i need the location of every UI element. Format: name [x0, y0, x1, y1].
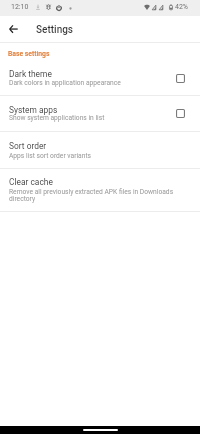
- staticText: 42%: [175, 3, 188, 11]
- staticText: Base settings: [8, 50, 50, 58]
- button[interactable]: Navigate up: [0, 16, 27, 42]
- button[interactable]: System apps: [0, 96, 200, 132]
- button[interactable]: Sort order: [0, 132, 200, 169]
- staticText: Show system applications in list: [9, 114, 173, 122]
- staticText: Clear cache: [9, 177, 53, 187]
- button[interactable]: Dark theme: [0, 43, 200, 96]
- staticText: System apps: [9, 105, 58, 115]
- staticText: Settings: [36, 24, 74, 36]
- staticText: 12:10: [11, 3, 29, 11]
- staticText: Remove all previously extracted APK file…: [9, 188, 189, 203]
- staticText: Apps list sort order variants: [9, 152, 189, 160]
- staticText: Dark theme: [9, 69, 52, 79]
- button[interactable]: Clear cache: [0, 168, 200, 212]
- staticText: Sort order: [9, 141, 47, 151]
- staticText: Dark colors in application appearance: [9, 79, 173, 87]
